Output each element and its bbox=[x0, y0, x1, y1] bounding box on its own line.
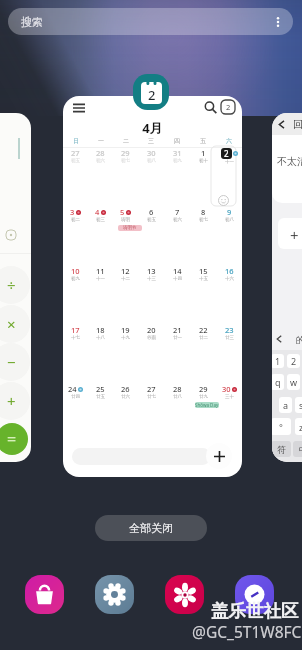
staticText: + bbox=[7, 391, 16, 411]
button[interactable]: 3 bbox=[63, 207, 88, 266]
button[interactable]: 20 bbox=[138, 325, 164, 384]
staticText: 初三 bbox=[96, 217, 105, 223]
button[interactable]: 1 bbox=[272, 354, 284, 368]
button[interactable]: 8 bbox=[190, 207, 216, 266]
staticText: 十三 bbox=[147, 276, 156, 282]
button[interactable]: 25 bbox=[88, 384, 113, 443]
staticText: 2 bbox=[148, 86, 156, 104]
button[interactable]: Add event bbox=[206, 443, 232, 469]
staticText: 十二 bbox=[121, 276, 130, 282]
staticText: 1 bbox=[201, 148, 206, 158]
staticText: 十六 bbox=[225, 276, 234, 282]
button[interactable]: z bbox=[295, 418, 302, 435]
button[interactable]: ÷ bbox=[0, 266, 30, 304]
button[interactable]: 18 bbox=[88, 325, 113, 384]
button[interactable]: 27 bbox=[63, 148, 88, 207]
staticText: 廿九 bbox=[199, 394, 208, 400]
staticText: 符 bbox=[277, 444, 286, 455]
button[interactable]: 符 bbox=[272, 441, 291, 457]
button[interactable]: q bbox=[272, 374, 284, 390]
button[interactable]: + bbox=[0, 382, 30, 420]
button[interactable]: Calendar app bbox=[133, 74, 169, 110]
button[interactable]: Search bbox=[204, 101, 217, 114]
staticText: 19 bbox=[121, 325, 130, 335]
button[interactable]: Galaxy Store bbox=[25, 575, 64, 614]
button[interactable]: Menu bbox=[63, 96, 242, 477]
button[interactable]: 28 bbox=[88, 148, 113, 207]
button[interactable]: 6 bbox=[138, 207, 164, 266]
staticText: 十一 bbox=[225, 159, 234, 165]
staticText: 31 bbox=[173, 148, 182, 158]
button[interactable]: 29 bbox=[190, 384, 216, 443]
button[interactable]: 中 bbox=[293, 441, 302, 457]
staticText: 四 bbox=[174, 137, 180, 145]
button[interactable]: 17 bbox=[63, 325, 88, 384]
button[interactable]: 28 bbox=[164, 384, 190, 443]
staticText: 初九 bbox=[173, 158, 182, 164]
button[interactable]: 回复 bbox=[272, 113, 302, 462]
button[interactable]: = bbox=[0, 423, 28, 455]
button[interactable]: 11 bbox=[88, 266, 113, 325]
staticText: 22 bbox=[199, 325, 208, 335]
staticText: Shōwa Day bbox=[195, 402, 219, 408]
staticText: 不太清楚 bbox=[277, 155, 302, 168]
staticText: 廿七 bbox=[147, 394, 156, 400]
button[interactable]: 2 bbox=[216, 148, 242, 207]
button[interactable]: 全部关闭 bbox=[95, 515, 207, 541]
staticText: 初八 bbox=[147, 158, 156, 164]
button[interactable]: 7 bbox=[164, 207, 190, 266]
button[interactable]: w bbox=[287, 374, 300, 390]
staticText: 清明 bbox=[121, 217, 130, 223]
staticText: 十一 bbox=[96, 276, 105, 282]
button[interactable]: 13 bbox=[138, 266, 164, 325]
staticText: 5 bbox=[120, 207, 125, 217]
staticText: 28 bbox=[173, 384, 182, 394]
button[interactable]: 27 bbox=[138, 384, 164, 443]
button[interactable]: Add attachment bbox=[278, 218, 302, 249]
button[interactable]: 22 bbox=[190, 325, 216, 384]
staticText: 盖乐世社区 bbox=[211, 600, 299, 622]
button[interactable]: 19 bbox=[113, 325, 138, 384]
button[interactable]: 16 bbox=[216, 266, 242, 325]
button[interactable]: 9 bbox=[216, 207, 242, 266]
button[interactable]: ÷ bbox=[0, 113, 31, 462]
button[interactable]: Gallery bbox=[165, 575, 204, 614]
button[interactable]: ° bbox=[272, 418, 291, 435]
button[interactable]: 2 bbox=[287, 354, 300, 368]
staticText: 14 bbox=[173, 266, 182, 276]
button[interactable]: 12 bbox=[113, 266, 138, 325]
button[interactable]: 24 bbox=[63, 384, 88, 443]
button[interactable]: 23 bbox=[216, 325, 242, 384]
button[interactable]: 26 bbox=[113, 384, 138, 443]
staticText: 初七 bbox=[121, 158, 130, 164]
button[interactable]: 21 bbox=[164, 325, 190, 384]
button[interactable]: 30 bbox=[216, 384, 242, 443]
button[interactable]: Settings bbox=[95, 575, 134, 614]
button[interactable]: 14 bbox=[164, 266, 190, 325]
button[interactable]: 15 bbox=[190, 266, 216, 325]
staticText: + bbox=[290, 225, 299, 245]
button[interactable]: 30 bbox=[138, 148, 164, 207]
button[interactable]: Jump to today bbox=[221, 100, 235, 114]
button[interactable]: 31 bbox=[164, 148, 190, 207]
button[interactable]: 4 bbox=[88, 207, 113, 266]
button[interactable]: 5 bbox=[113, 207, 138, 266]
button[interactable]: 10 bbox=[63, 266, 88, 325]
button[interactable]: × bbox=[0, 305, 30, 343]
staticText: 2 bbox=[226, 102, 231, 112]
staticText: a bbox=[283, 399, 289, 411]
button[interactable]: a bbox=[279, 397, 292, 413]
staticText: 十四 bbox=[173, 276, 182, 282]
button[interactable]: 29 bbox=[113, 148, 138, 207]
button[interactable]: 1 bbox=[190, 148, 216, 207]
staticText: ÷ bbox=[7, 275, 16, 295]
staticText: 30 bbox=[147, 148, 156, 158]
button[interactable]: 搜索 bbox=[8, 8, 293, 35]
button[interactable]: Menu bbox=[73, 102, 85, 114]
staticText: z bbox=[299, 421, 302, 433]
button[interactable]: s bbox=[295, 397, 302, 413]
staticText: 29 bbox=[121, 148, 130, 158]
button[interactable]: Clock bbox=[235, 575, 274, 614]
button[interactable]: − bbox=[0, 343, 30, 381]
